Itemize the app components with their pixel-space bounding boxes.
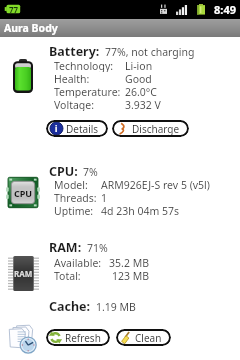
- staticText: Li-ion: [125, 59, 153, 72]
- staticText: Details: [66, 122, 99, 136]
- staticText: Model:: [54, 178, 88, 191]
- staticText: 123 MB: [105, 269, 149, 282]
- staticText: i: [55, 123, 58, 134]
- staticText: 77%, not charging: [105, 45, 195, 59]
- staticText: 35.2 MB: [105, 256, 149, 269]
- staticText: Available:: [54, 256, 102, 269]
- staticText: Threads:: [54, 191, 97, 204]
- staticText: Technology:: [54, 59, 114, 72]
- staticText: Uptime:: [54, 204, 94, 217]
- staticText: RAM: [14, 268, 33, 279]
- button[interactable]: Refresh: [46, 329, 110, 346]
- staticText: 1.19 MB: [96, 300, 136, 314]
- staticText: CPU:: [49, 163, 78, 180]
- staticText: Cache:: [49, 298, 91, 315]
- staticText: 3.932 V: [125, 98, 161, 111]
- staticText: RAM:: [49, 239, 82, 256]
- staticText: Aura Body: [4, 21, 58, 35]
- staticText: Voltage:: [54, 98, 95, 111]
- staticText: 71%: [87, 241, 108, 255]
- staticText: 7%: [83, 165, 98, 179]
- staticText: ARM926EJ-S rev 5 (v5l): [101, 178, 210, 191]
- staticText: 1: [101, 191, 108, 204]
- staticText: Refresh: [65, 331, 101, 345]
- staticText: 77: [9, 4, 19, 15]
- staticText: Clean: [135, 331, 162, 345]
- staticText: Health:: [54, 72, 90, 85]
- staticText: Total:: [54, 269, 81, 282]
- staticText: CPU: [14, 187, 33, 199]
- staticText: 26.0°C: [125, 85, 157, 98]
- staticText: Battery:: [49, 43, 100, 60]
- staticText: 8:49: [214, 2, 236, 17]
- button[interactable]: i: [46, 120, 108, 137]
- staticText: Temperature:: [54, 85, 121, 98]
- button[interactable]: Discharge: [112, 120, 189, 137]
- staticText: 4d 23h 04m 57s: [101, 204, 180, 217]
- staticText: Discharge: [132, 122, 180, 136]
- button[interactable]: Clean: [116, 329, 171, 346]
- staticText: Good: [125, 72, 152, 85]
